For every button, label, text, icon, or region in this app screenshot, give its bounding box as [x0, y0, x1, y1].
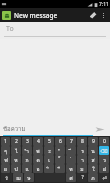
button[interactable]: 4	[33, 137, 43, 146]
staticText: ฝ	[103, 165, 106, 173]
button[interactable]: 0	[99, 137, 109, 146]
button[interactable]: ข้อความ	[3, 124, 93, 134]
staticText: 6	[59, 138, 62, 145]
button[interactable]: ป	[11, 164, 21, 173]
staticText: ฟ	[4, 156, 8, 164]
button[interactable]: ส	[88, 155, 98, 164]
button[interactable]: ฌ	[13, 173, 23, 182]
button[interactable]: ?	[77, 173, 87, 182]
button[interactable]: อ	[33, 164, 43, 173]
staticText: ใ	[92, 165, 95, 173]
button[interactable]: ะ	[44, 146, 54, 155]
button[interactable]: ม	[77, 164, 87, 173]
staticText: 4	[37, 138, 40, 145]
staticText: ?	[81, 174, 84, 181]
button[interactable]: Send	[93, 123, 107, 135]
staticText: ร	[81, 147, 84, 155]
button[interactable]: 7	[66, 137, 76, 146]
staticText: ภ	[91, 174, 95, 182]
staticText: 0	[103, 138, 106, 145]
staticText: ว	[103, 156, 106, 164]
staticText: แ	[25, 165, 29, 173]
button[interactable]: ผ	[1, 164, 10, 173]
button[interactable]: ำ	[22, 146, 32, 155]
staticText: ำ	[26, 147, 29, 155]
button[interactable]: ฝ	[99, 164, 109, 173]
staticText: ก	[25, 156, 29, 164]
button[interactable]: ร	[77, 146, 87, 155]
button[interactable]: 1	[1, 137, 10, 146]
button[interactable]: ภ	[88, 173, 98, 182]
staticText: ข้อความ	[3, 124, 26, 134]
staticText: 8	[81, 138, 84, 145]
button[interactable]: ห	[11, 155, 21, 164]
button[interactable]: ฟ	[1, 155, 10, 164]
button[interactable]: ั	[55, 146, 65, 155]
staticText: ส	[91, 156, 95, 164]
button[interactable]: ⏎	[99, 173, 109, 182]
button[interactable]: พ	[33, 146, 43, 155]
staticText: ป	[14, 165, 18, 173]
staticText: 2	[15, 138, 18, 145]
button[interactable]: 9	[88, 137, 98, 146]
button[interactable]: แ	[22, 164, 32, 173]
staticText: 7:11	[99, 1, 109, 8]
staticText: ฌ	[16, 174, 21, 182]
button[interactable]: ้	[55, 155, 65, 164]
button[interactable]: ่	[66, 155, 76, 164]
button[interactable]: ษ	[24, 173, 34, 182]
staticText: ⌫	[100, 148, 108, 154]
button[interactable]: ศ	[66, 173, 76, 182]
staticText: 5	[48, 138, 51, 145]
button[interactable]: 6	[55, 137, 65, 146]
button[interactable]: ด	[33, 155, 43, 164]
staticText: น	[91, 147, 95, 155]
staticText: อ	[36, 165, 40, 173]
button[interactable]: ท	[66, 164, 76, 173]
staticText: To	[6, 24, 14, 34]
button[interactable]: า	[77, 155, 87, 164]
button[interactable]: ี	[66, 146, 76, 155]
button[interactable]: น	[88, 146, 98, 155]
button[interactable]: ไ	[11, 146, 21, 155]
button[interactable]: ใ	[88, 164, 98, 173]
staticText: เ	[48, 156, 50, 164]
staticText: New message	[14, 11, 58, 20]
button[interactable]: ⌫	[99, 146, 109, 155]
staticText: ⇧	[4, 175, 9, 181]
button[interactable]: To	[0, 22, 110, 36]
staticText: ผ	[4, 165, 7, 173]
button[interactable]: 8	[77, 137, 87, 146]
staticText: ⏎	[102, 175, 107, 181]
staticText: า	[81, 156, 84, 164]
button[interactable]: ื	[55, 164, 65, 173]
button[interactable]: More options	[99, 8, 108, 22]
staticText: ม	[80, 165, 84, 173]
staticText: ๆ	[4, 147, 7, 155]
button[interactable]: ก	[22, 155, 32, 164]
button[interactable]: 3	[22, 137, 32, 146]
button[interactable]: 2	[11, 137, 21, 146]
staticText: ไ	[15, 147, 18, 155]
staticText: ศ	[69, 174, 73, 182]
button[interactable]: ⇧	[1, 173, 12, 182]
button[interactable]: 5	[44, 137, 54, 146]
staticText: ด	[36, 156, 40, 164]
staticText: 7	[70, 138, 73, 145]
staticText: 9	[92, 138, 95, 145]
button[interactable]: ิ	[44, 164, 54, 173]
button[interactable]: Attach	[87, 8, 99, 22]
staticText: พ	[36, 147, 40, 155]
staticText: 3	[26, 138, 29, 145]
button[interactable]: ๆ	[1, 146, 10, 155]
staticText: ะ	[48, 147, 51, 155]
button[interactable]: ว	[99, 155, 109, 164]
staticText: ท	[69, 165, 73, 173]
staticText: ษ	[27, 174, 31, 182]
staticText: 1	[4, 138, 7, 145]
button[interactable]: Up	[2, 11, 11, 20]
button[interactable]: เ	[44, 155, 54, 164]
staticText: ห	[14, 156, 18, 164]
